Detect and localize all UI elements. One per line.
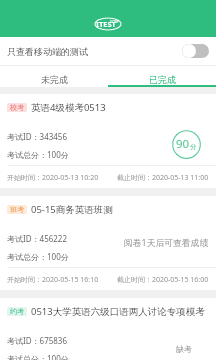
button[interactable]: 已完成	[108, 66, 216, 87]
staticText: 考试ID：456222	[7, 233, 68, 244]
staticText: 班考	[10, 205, 24, 214]
staticText: FLTRP	[110, 20, 119, 24]
staticText: 考试总分：100分	[7, 353, 69, 360]
staticText: 开始时间：2020-05-13 10:20	[7, 173, 99, 183]
staticText: 考试总分：100分	[7, 149, 69, 160]
staticText: 只查看移动端的测试	[7, 46, 88, 57]
staticText: 英语4级模考0513	[31, 101, 209, 114]
staticText: 0513大学英语六级口语两人讨论专项模考	[31, 305, 209, 318]
other: ITEST logo	[95, 18, 121, 30]
button[interactable]: 约考	[0, 298, 216, 360]
button[interactable]: Only show mobile tests toggle	[182, 44, 209, 58]
staticText: 截止时间：2020-05-13 11:00	[117, 173, 209, 183]
staticText: 考试ID：675836	[7, 335, 68, 346]
staticText: 90	[176, 136, 190, 152]
staticText: 约考	[10, 307, 24, 316]
staticText: 考试ID：343456	[7, 131, 68, 142]
staticText: 阅卷1天后可查看成绩	[124, 237, 209, 249]
staticText: 考试总分：100分	[7, 251, 69, 262]
staticText: 未完成	[41, 74, 68, 85]
staticText: ITEST	[96, 19, 116, 29]
staticText: 截止时间：2020-05-15 16:00	[117, 275, 209, 285]
staticText: 已完成	[149, 74, 176, 85]
staticText: 校考	[10, 103, 24, 112]
staticText: 缺考	[176, 344, 192, 354]
button[interactable]: 未完成	[0, 66, 108, 87]
staticText: 分	[190, 143, 197, 151]
button[interactable]: 校考	[0, 94, 216, 188]
staticText: 开始时间：2020-05-15 16:10	[7, 275, 99, 285]
button[interactable]: 班考	[0, 196, 216, 290]
staticText: 05-15商务英语班测	[31, 203, 209, 216]
